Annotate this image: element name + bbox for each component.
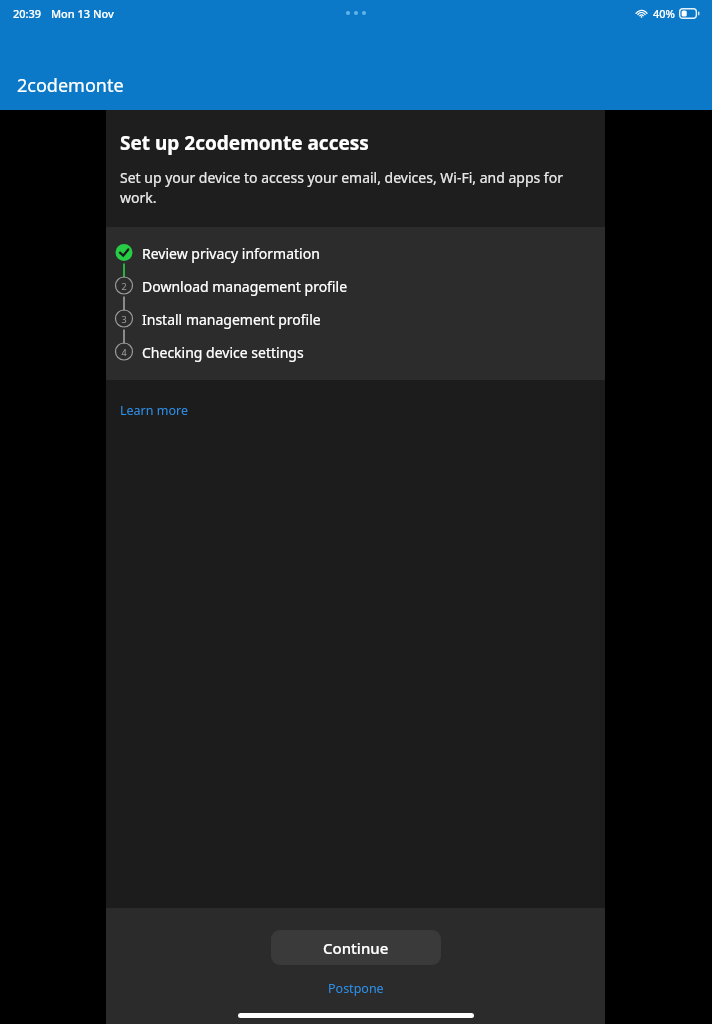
staticText: Install management profile [142,310,321,329]
staticText: 40% [653,6,675,21]
staticText: 2 [106,280,142,292]
staticText: Download management profile [142,277,348,296]
staticText: 2codemonte [17,73,124,98]
button[interactable]: 4 [106,342,605,362]
staticText: Continue [323,938,389,958]
button[interactable]: 2 [106,276,605,309]
staticText: Mon 13 Nov [51,6,114,21]
staticText: Learn more [120,402,188,419]
staticText: Set up 2codemonte access [120,130,369,156]
other: Home indicator [238,1013,474,1018]
staticText: 4 [106,346,142,358]
button[interactable]: Review privacy information [106,243,605,276]
staticText: Set up your device to access your email,… [120,168,583,207]
button[interactable]: Continue [271,930,441,965]
button[interactable]: Postpone [312,977,400,1000]
staticText: Checking device settings [142,343,304,362]
button[interactable]: 3 [106,309,605,342]
button[interactable]: Learn more [120,402,188,419]
staticText: Review privacy information [142,244,320,263]
staticText: 20:39 [13,6,42,21]
staticText: Postpone [328,980,384,997]
staticText: 3 [106,313,142,325]
